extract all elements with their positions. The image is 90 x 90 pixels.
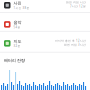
button[interactable]: 지도 [0, 31, 90, 52]
staticText: 마지막 충전 후 12시간 [55, 39, 86, 42]
staticText: 54분 [13, 25, 20, 29]
button[interactable]: 음악 [0, 12, 90, 31]
staticText: 화면 꺼짐 3시간 [64, 43, 86, 46]
staticText: 배터리 잔량 [4, 58, 25, 63]
staticText: 화면 켜짐 시간 [66, 1, 86, 4]
staticText: 음악 [13, 20, 21, 25]
button[interactable]: 사진 [0, 0, 90, 12]
staticText: 32분 [13, 44, 20, 48]
staticText: 7시간 12분 [70, 5, 86, 8]
staticText: 지도 [13, 39, 21, 44]
staticText: 1시간 38분 [13, 6, 29, 10]
staticText: 사진 [13, 1, 21, 6]
